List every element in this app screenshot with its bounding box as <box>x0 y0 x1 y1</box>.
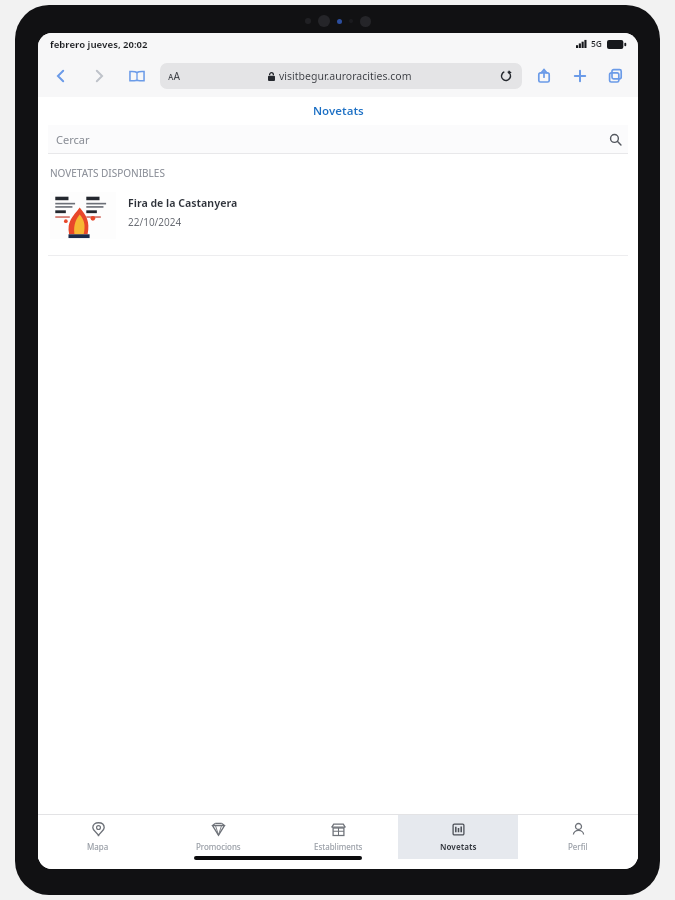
button[interactable]: Back <box>50 65 72 87</box>
button[interactable]: New Tab <box>570 66 590 86</box>
button[interactable]: Cercar <box>48 125 628 153</box>
staticText: Fira de la Castanyera <box>128 196 238 210</box>
button[interactable]: Establiments <box>278 815 398 859</box>
staticText: Promocions <box>196 841 241 852</box>
button[interactable]: Tabs <box>606 66 626 86</box>
staticText: Cercar <box>56 132 90 147</box>
staticText: ᴀA <box>168 69 181 83</box>
staticText: Establiments <box>314 841 363 852</box>
staticText: Mapa <box>87 841 109 852</box>
staticText: 5G <box>591 38 603 50</box>
staticText: Perfil <box>568 841 588 852</box>
button[interactable]: Mapa <box>38 815 158 859</box>
button[interactable]: Share <box>534 66 554 86</box>
button[interactable]: Forward <box>88 65 110 87</box>
staticText: febrero jueves, 20:02 <box>50 38 148 51</box>
staticText: Novetats <box>313 103 364 119</box>
staticText: NOVETATS DISPONIBLES <box>50 166 165 180</box>
button[interactable]: Fira de la Castanyera <box>38 190 638 241</box>
button[interactable]: ᴀA <box>160 63 522 89</box>
button[interactable]: Novetats <box>398 815 518 859</box>
button[interactable]: Promocions <box>158 815 278 859</box>
button[interactable]: Bookmarks <box>126 65 148 87</box>
staticText: 22/10/2024 <box>128 215 182 229</box>
button[interactable]: Reload <box>498 68 514 84</box>
button[interactable]: Perfil <box>518 815 638 859</box>
staticText: visitbegur.auroracities.com <box>279 69 412 83</box>
staticText: Novetats <box>440 841 477 852</box>
